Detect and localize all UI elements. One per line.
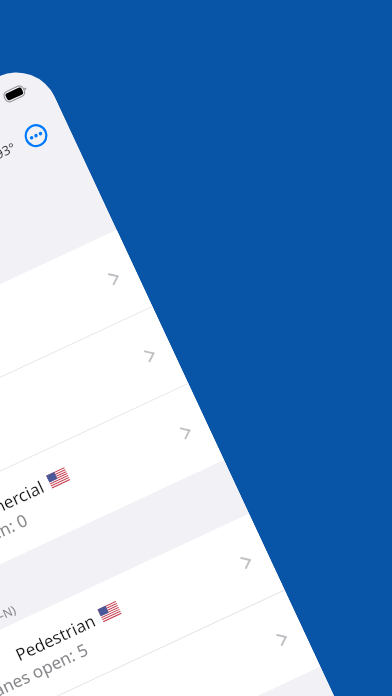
- button[interactable]: Commercial: [0, 384, 224, 637]
- staticText: Commercial: [0, 475, 48, 536]
- button[interactable]: SENTRI: [0, 307, 188, 560]
- button[interactable]: Ready lanes: [0, 230, 152, 483]
- button[interactable]: SENTRI: [0, 590, 320, 696]
- button[interactable]: More options: [21, 120, 51, 151]
- staticText: Pedestrian: [12, 609, 99, 666]
- button[interactable]: Pedestrian: [0, 513, 285, 696]
- staticText: SAN YSIDRO (CA–N): [0, 601, 19, 662]
- staticText: Lanes open: 0: [0, 508, 31, 576]
- staticText: 93°: [0, 138, 19, 163]
- staticText: Lanes open: 5: [0, 638, 92, 696]
